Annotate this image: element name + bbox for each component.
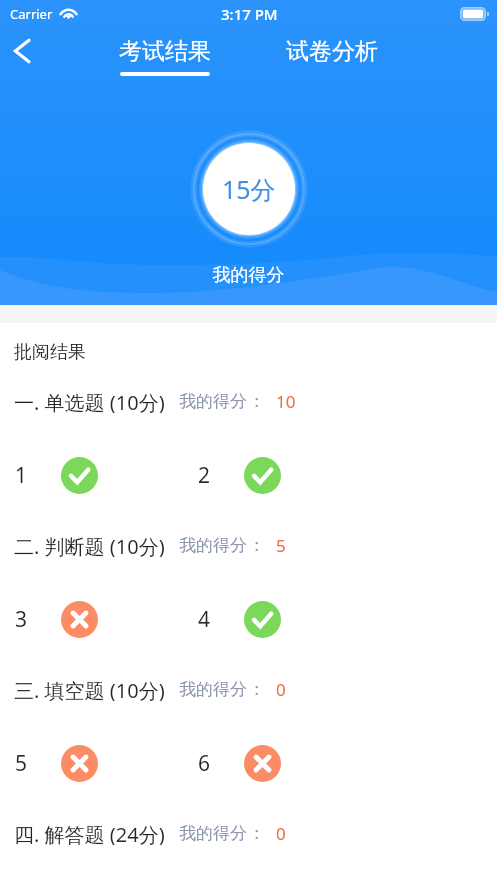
staticText: 6 [198,749,211,778]
staticText: 我的得分 [0,264,497,287]
staticText: 三. 填空题 (10分) [14,677,165,701]
staticText: 试卷分析 [286,37,378,66]
staticText: 4 [198,605,211,634]
staticText: 3:17 PM [221,4,278,24]
staticText: 0 [276,822,286,845]
button[interactable]: 6 [183,744,323,782]
staticText: 2 [198,461,211,490]
staticText: ： [248,391,265,412]
button[interactable]: 考试结果 [110,26,220,76]
button[interactable]: 试卷分析 [277,26,387,76]
staticText: Carrier [10,5,53,23]
staticText: 一. 单选题 (10分) [14,389,165,413]
staticText: ： [248,679,265,700]
staticText: 1 [15,461,28,490]
staticText: 我的得分 [179,535,247,556]
staticText: 我的得分 [179,391,247,412]
staticText: ： [248,823,265,844]
staticText: 批阅结果 [14,341,86,364]
staticText: 考试结果 [119,37,211,66]
staticText: 我的得分 [179,679,247,700]
staticText: 5 [276,534,286,557]
staticText: 15分 [222,172,276,206]
button[interactable]: 5 [0,744,140,782]
staticText: 3 [15,605,28,634]
staticText: ： [248,535,265,556]
button[interactable]: 4 [183,600,323,638]
staticText: 二. 判断题 (10分) [14,533,165,557]
button[interactable]: 1 [0,456,140,494]
staticText: 10 [276,390,296,413]
staticText: 我的得分 [179,823,247,844]
button[interactable]: 2 [183,456,323,494]
staticText: 四. 解答题 (24分) [14,821,165,845]
button[interactable]: Back [0,28,46,74]
button[interactable]: 3 [0,600,140,638]
staticText: 0 [276,678,286,701]
staticText: 5 [15,749,28,778]
